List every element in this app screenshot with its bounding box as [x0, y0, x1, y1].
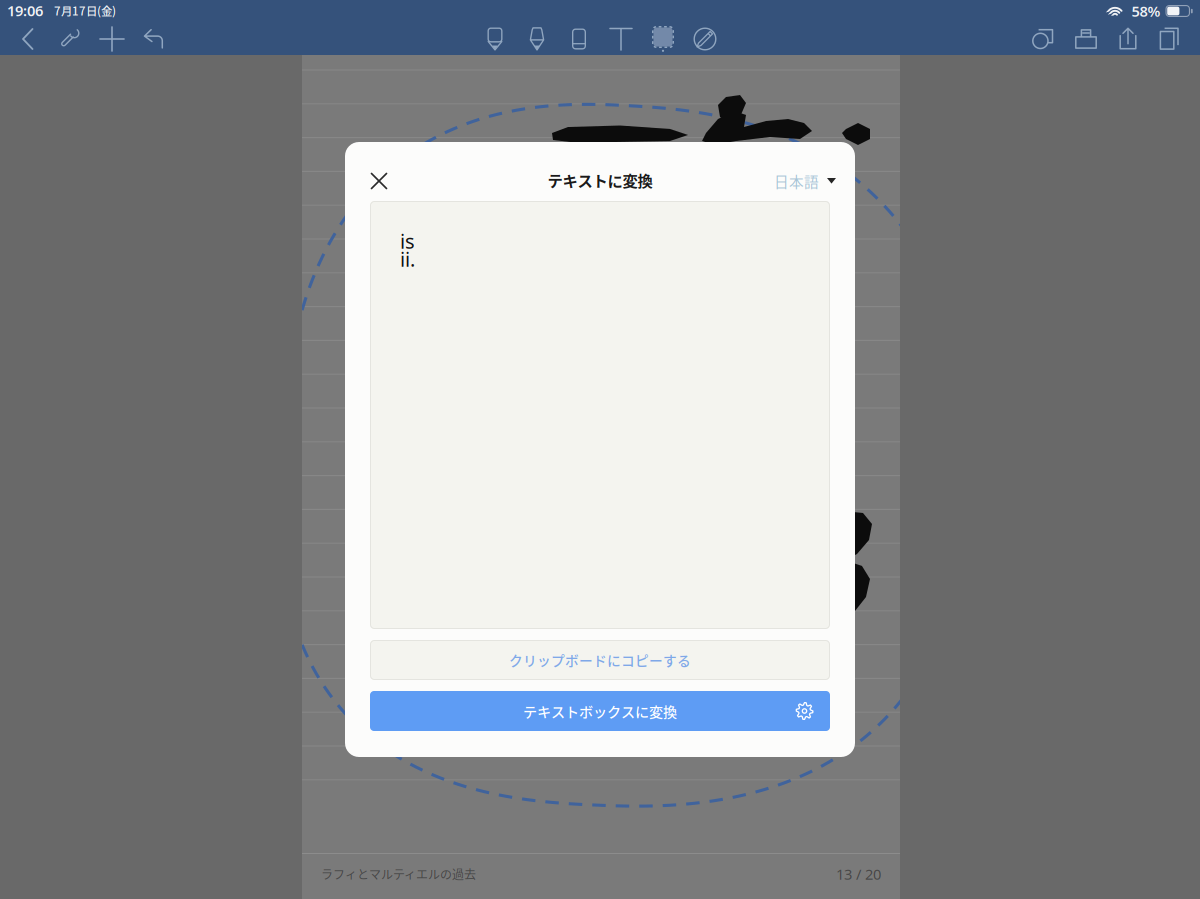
button[interactable]: Share [1107, 23, 1149, 55]
staticText: 13 / 20 [836, 864, 881, 884]
staticText: 日本語 [774, 170, 819, 192]
button[interactable]: Text [600, 23, 642, 55]
button[interactable]: Highlighter [516, 23, 558, 55]
staticText: クリップボードにコピーする [509, 650, 691, 670]
button[interactable]: Eraser [558, 23, 600, 55]
staticText: 58% [1131, 1, 1160, 21]
button[interactable]: Undo [133, 23, 175, 55]
staticText: ii. [400, 246, 415, 272]
button[interactable]: Pages [1149, 23, 1191, 55]
button[interactable]: Pen [474, 23, 516, 55]
button[interactable]: Close [359, 162, 399, 200]
button[interactable]: テキストボックスに変換 [370, 691, 830, 731]
button[interactable]: Presentation mode [1065, 23, 1107, 55]
staticText: 7月17日(金) [54, 2, 116, 19]
staticText: ラフィとマルティエルの過去 [321, 865, 476, 883]
button[interactable]: 日本語 [750, 163, 836, 199]
staticText: is [400, 228, 415, 254]
staticText: テキストボックスに変換 [523, 701, 677, 721]
button[interactable]: Zoom [1023, 23, 1065, 55]
button[interactable]: Back [7, 23, 49, 55]
staticText: 19:06 [7, 1, 43, 20]
button[interactable]: クリップボードにコピーする [370, 640, 830, 680]
button[interactable]: Tools [49, 23, 91, 55]
button[interactable]: Add page [91, 23, 133, 55]
button[interactable]: Disable pen [684, 23, 726, 55]
staticText: テキストに変換 [547, 169, 652, 191]
button[interactable]: Lasso select [642, 23, 684, 55]
